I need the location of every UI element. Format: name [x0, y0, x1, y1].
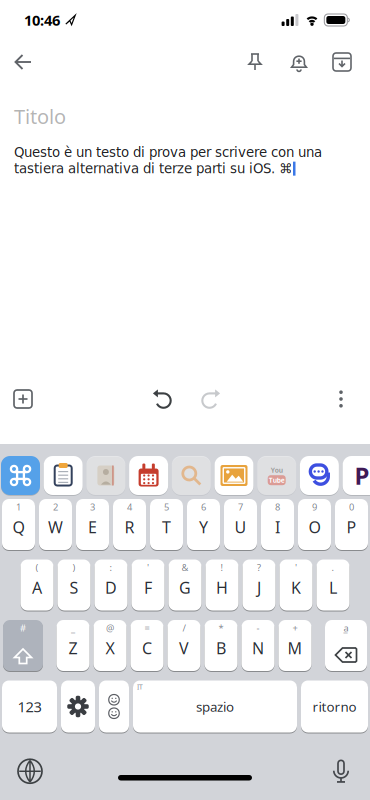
button[interactable]	[0, 390, 32, 408]
staticText: !	[220, 561, 223, 574]
staticText: H	[216, 577, 228, 598]
button[interactable]: 5	[150, 499, 183, 550]
button[interactable]	[0, 759, 42, 783]
staticText: A	[32, 577, 42, 598]
staticText: Q	[12, 516, 24, 538]
button[interactable]: )	[57, 559, 90, 610]
button[interactable]	[172, 456, 211, 495]
staticText: 1	[16, 501, 21, 513]
staticText: 10:46	[24, 10, 60, 30]
button[interactable]: -	[241, 620, 274, 671]
button[interactable]	[300, 456, 339, 495]
button[interactable]: @	[93, 620, 126, 671]
staticText: 2	[53, 501, 58, 513]
staticText: You	[271, 466, 283, 475]
button[interactable]	[332, 759, 370, 784]
staticText: N	[252, 637, 264, 659]
button[interactable]: (	[20, 559, 53, 610]
button[interactable]	[338, 390, 370, 408]
button[interactable]: 4	[113, 499, 146, 550]
button[interactable]: '	[279, 559, 312, 610]
staticText: B	[216, 637, 226, 659]
staticText: W	[48, 516, 63, 538]
button[interactable]: #	[3, 620, 43, 671]
button[interactable]: '	[131, 559, 164, 610]
button[interactable]: IT	[133, 680, 297, 732]
button[interactable]	[86, 456, 125, 495]
staticText: 9	[312, 501, 317, 513]
button[interactable]: 9	[298, 499, 331, 550]
button[interactable]: P	[343, 456, 370, 495]
staticText: R	[124, 516, 134, 538]
staticText: Titolo	[14, 103, 66, 130]
staticText: 8	[275, 501, 280, 513]
button[interactable]: 8	[261, 499, 294, 550]
button[interactable]	[247, 53, 263, 71]
staticText: Z	[68, 637, 77, 659]
button[interactable]: 0	[335, 499, 368, 550]
button[interactable]: 1	[2, 499, 35, 550]
button[interactable]: *	[204, 620, 237, 671]
button[interactable]: =	[130, 620, 163, 671]
button[interactable]: 7	[224, 499, 257, 550]
staticText: J	[257, 577, 261, 598]
staticText: M	[287, 637, 302, 659]
button[interactable]	[129, 456, 168, 495]
staticText: S	[69, 577, 78, 598]
staticText: F	[144, 577, 152, 598]
button[interactable]	[0, 54, 32, 70]
staticText: /	[182, 622, 185, 634]
button[interactable]	[333, 53, 370, 71]
button[interactable]	[214, 456, 253, 495]
button[interactable]	[200, 389, 220, 409]
button[interactable]: !	[205, 559, 238, 610]
staticText: @	[106, 622, 114, 634]
button[interactable]: ritorno	[301, 680, 368, 732]
staticText: ritorno	[312, 698, 356, 715]
button[interactable]: .	[316, 559, 349, 610]
button[interactable]	[289, 52, 309, 72]
staticText: -	[256, 622, 259, 634]
button[interactable]: You	[257, 456, 296, 495]
staticText: &	[181, 561, 188, 574]
staticText: '	[295, 561, 297, 574]
staticText: tastiera alternativa di terze parti su i…	[14, 161, 292, 176]
staticText: Y	[199, 516, 208, 538]
staticText: 6	[201, 501, 206, 513]
button[interactable]: 123	[2, 680, 57, 732]
button[interactable]: :	[94, 559, 127, 610]
button[interactable]	[44, 456, 83, 495]
button[interactable]: ?	[242, 559, 275, 610]
staticText: _	[71, 622, 75, 634]
button[interactable]: &	[168, 559, 201, 610]
button[interactable]	[152, 389, 172, 409]
staticText: )	[72, 561, 75, 574]
button[interactable]: +	[278, 620, 311, 671]
button[interactable]: 2	[39, 499, 72, 550]
button[interactable]: a̲	[325, 620, 367, 671]
button[interactable]	[99, 680, 129, 732]
staticText: P	[355, 460, 370, 491]
staticText: D	[105, 577, 117, 598]
staticText: 5	[164, 501, 169, 513]
button[interactable]: 6	[187, 499, 220, 550]
button[interactable]	[1, 456, 40, 495]
button[interactable]: _	[56, 620, 89, 671]
staticText: 123	[17, 697, 41, 716]
staticText: O	[308, 516, 320, 538]
staticText: U	[234, 516, 246, 538]
staticText: X	[105, 637, 114, 659]
staticText: T	[162, 516, 171, 538]
staticText: C	[142, 637, 152, 659]
staticText: 3	[90, 501, 95, 513]
staticText: P	[346, 516, 356, 538]
button[interactable]: /	[167, 620, 200, 671]
button[interactable]	[61, 680, 95, 732]
staticText: (	[35, 561, 38, 574]
staticText: V	[179, 637, 189, 659]
staticText: E	[88, 516, 97, 538]
staticText: *	[218, 622, 223, 634]
staticText: 4	[127, 501, 132, 513]
button[interactable]: 3	[76, 499, 109, 550]
staticText: G	[179, 577, 191, 598]
